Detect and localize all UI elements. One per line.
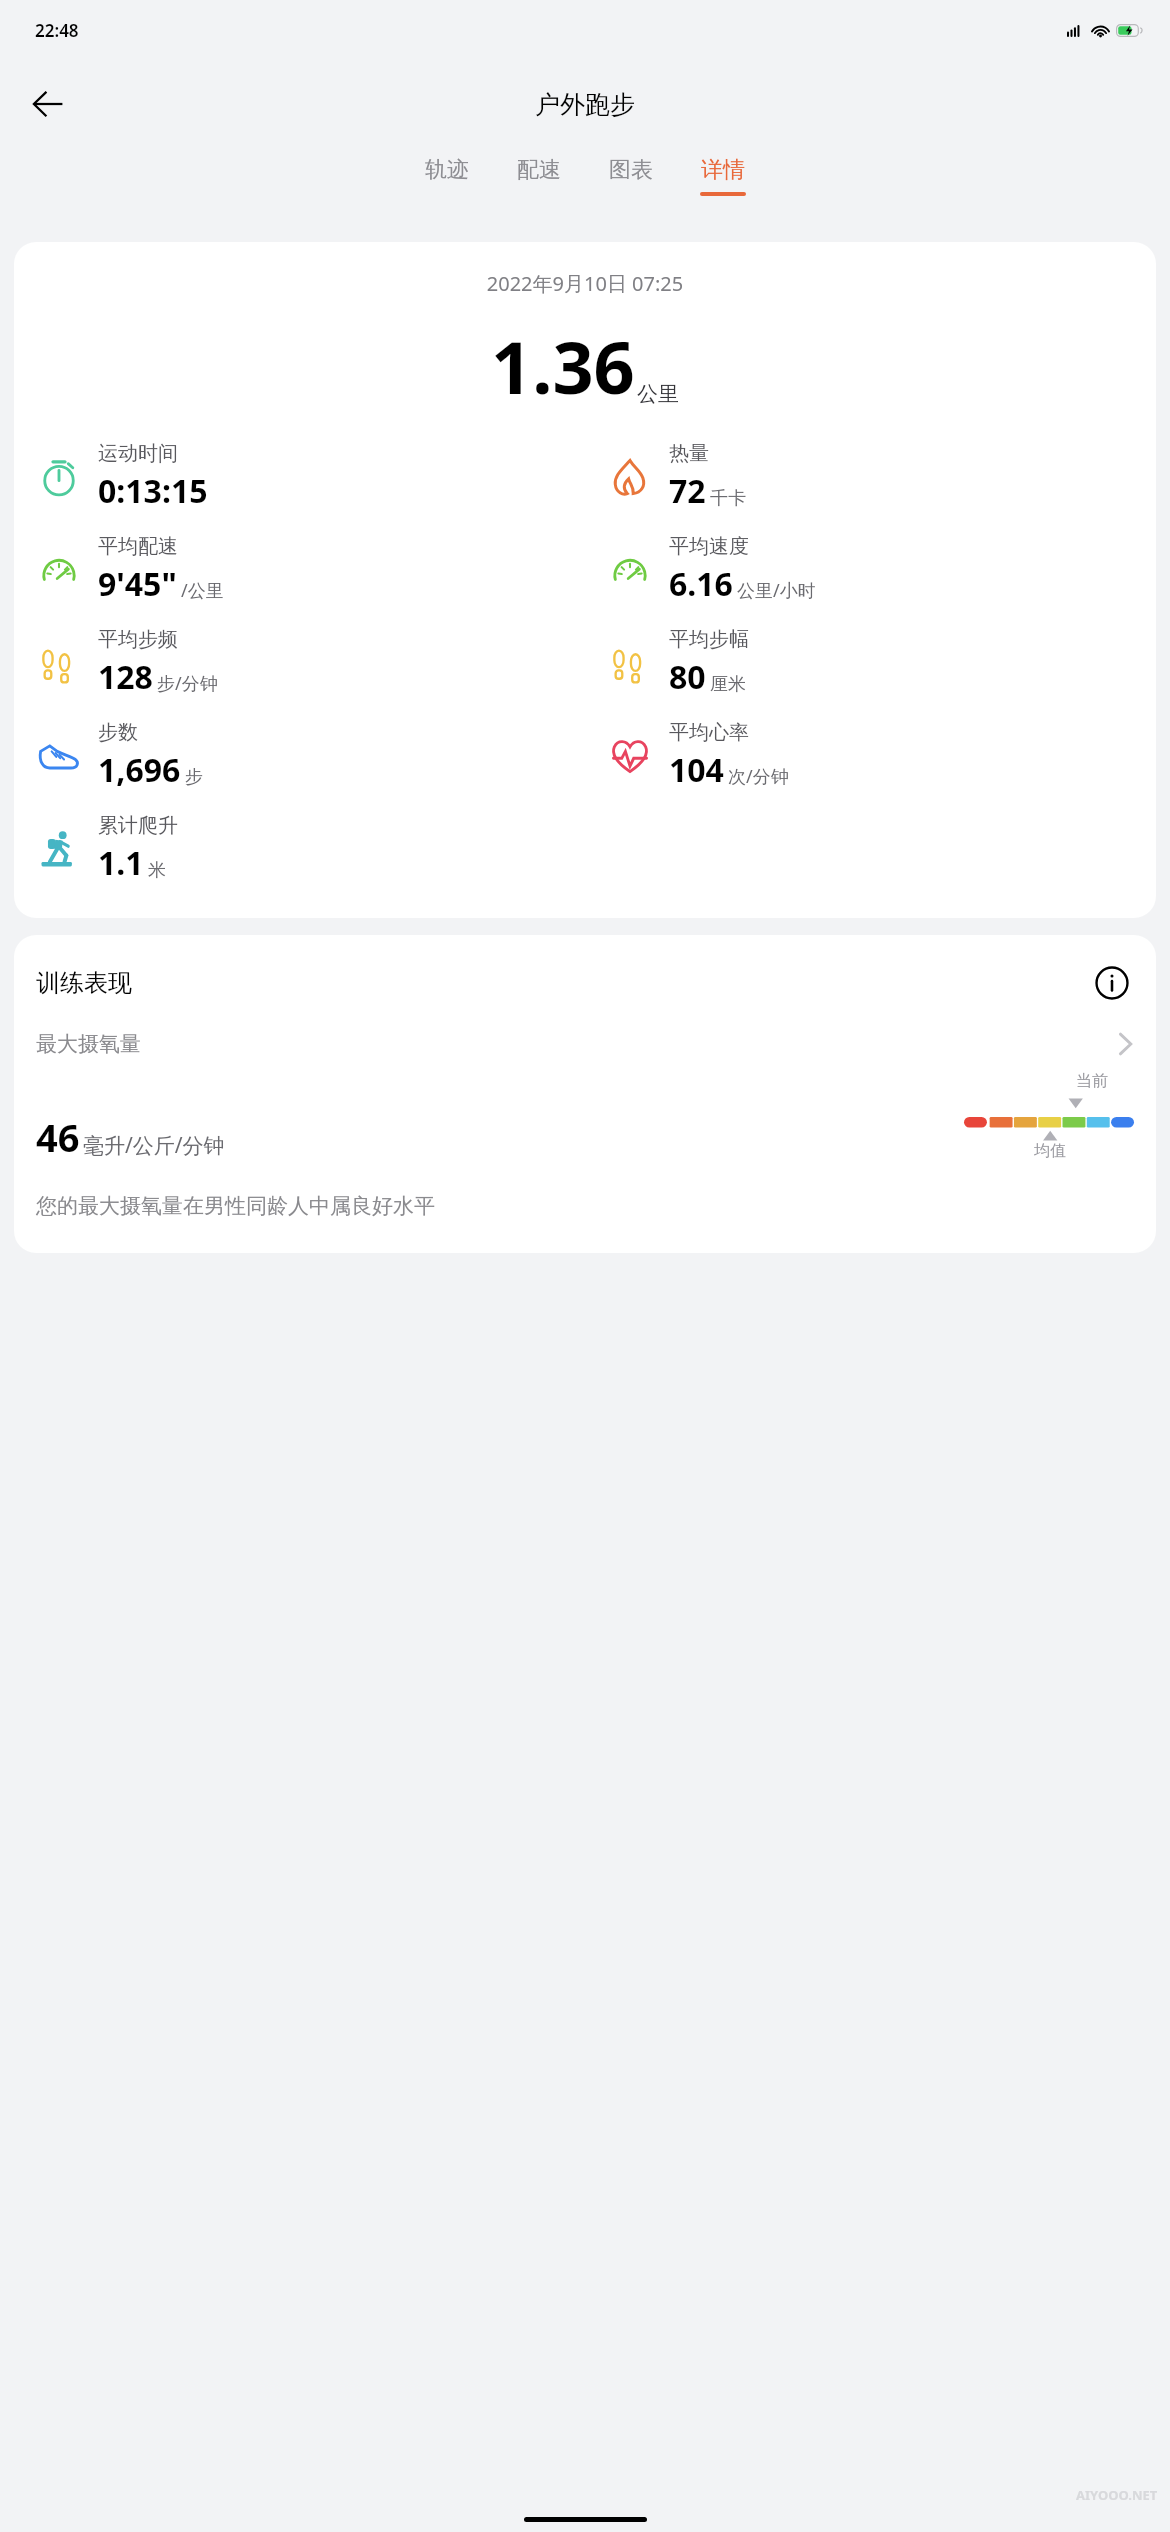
- staticText: 次/分钟: [728, 764, 789, 789]
- staticText: 1.36: [491, 317, 635, 415]
- staticText: 公里/小时: [737, 578, 816, 603]
- staticText: 72: [669, 469, 706, 513]
- staticText: 平均步频: [98, 627, 178, 652]
- staticText: 您的最大摄氧量在男性同龄人中属良好水平: [36, 1193, 435, 1219]
- staticText: AIYOOO.NET: [1076, 2486, 1158, 2504]
- staticText: 46: [36, 1111, 80, 1163]
- staticText: 轨迹: [425, 156, 469, 184]
- button[interactable]: 轨迹: [401, 148, 493, 192]
- staticText: 1,696: [98, 748, 181, 792]
- staticText: 80: [669, 655, 706, 699]
- staticText: 步: [185, 766, 203, 789]
- staticText: 步/分钟: [157, 671, 218, 696]
- button[interactable]: 最大摄氧量: [36, 1031, 1134, 1057]
- staticText: 平均步幅: [669, 627, 749, 652]
- staticText: 最大摄氧量: [36, 1031, 141, 1057]
- staticText: 1.1: [98, 841, 144, 885]
- staticText: 22:48: [35, 19, 79, 42]
- staticText: 平均配速: [98, 534, 178, 559]
- staticText: 配速: [517, 156, 561, 184]
- button[interactable]: Info: [1090, 961, 1134, 1005]
- staticText: 平均心率: [669, 720, 749, 745]
- staticText: /公里: [181, 578, 224, 603]
- staticText: 热量: [669, 441, 709, 466]
- staticText: 2022年9月10日 07:25: [14, 270, 1156, 297]
- staticText: 公里: [637, 381, 679, 407]
- staticText: 平均速度: [669, 534, 749, 559]
- button[interactable]: Back: [20, 76, 76, 132]
- staticText: 厘米: [710, 673, 746, 696]
- staticText: 户外跑步: [535, 89, 635, 120]
- staticText: 6.16: [669, 562, 733, 606]
- staticText: 9'45": [98, 562, 177, 606]
- staticText: 运动时间: [98, 441, 178, 466]
- staticText: 0:13:15: [98, 469, 208, 513]
- staticText: 128: [98, 655, 153, 699]
- staticText: 104: [669, 748, 724, 792]
- staticText: 均值: [1034, 1141, 1066, 1161]
- staticText: 累计爬升: [98, 813, 178, 838]
- button[interactable]: 详情: [677, 148, 769, 196]
- staticText: 千卡: [710, 487, 746, 510]
- staticText: 图表: [609, 156, 653, 184]
- button[interactable]: 配速: [493, 148, 585, 192]
- staticText: 训练表现: [36, 968, 132, 998]
- staticText: 步数: [98, 720, 138, 745]
- button[interactable]: 图表: [585, 148, 677, 192]
- staticText: 米: [148, 859, 166, 882]
- staticText: 详情: [701, 156, 745, 184]
- staticText: 当前: [1076, 1071, 1108, 1091]
- staticText: 毫升/公斤/分钟: [83, 1131, 225, 1160]
